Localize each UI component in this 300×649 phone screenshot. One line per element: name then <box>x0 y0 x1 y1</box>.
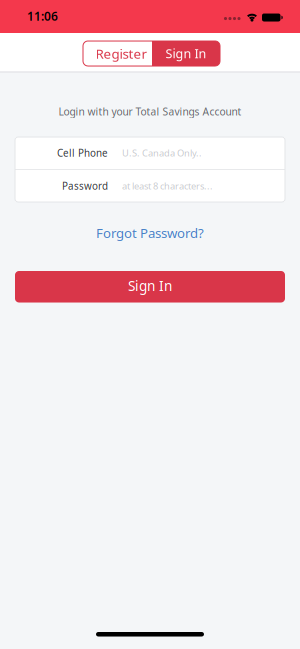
staticText: Sign In <box>128 276 172 295</box>
staticText: Login with your Total Savings Account <box>58 104 241 118</box>
staticText: Sign In <box>165 45 206 62</box>
button[interactable]: Password <box>15 170 285 202</box>
button[interactable]: Sign In <box>15 271 285 302</box>
staticText: Forgot Password? <box>96 224 204 242</box>
staticText: Register <box>95 44 147 63</box>
button[interactable]: Forgot Password? <box>96 224 204 242</box>
staticText: U.S. Canada Only.. <box>122 147 202 159</box>
button[interactable]: Sign In <box>152 41 220 66</box>
staticText: Password <box>62 179 108 193</box>
staticText: at least 8 characters... <box>122 180 213 192</box>
button[interactable]: Register <box>83 41 152 66</box>
staticText: Cell Phone <box>57 146 108 160</box>
button[interactable]: Cell Phone <box>15 137 285 169</box>
staticText: 11:06 <box>27 8 58 24</box>
